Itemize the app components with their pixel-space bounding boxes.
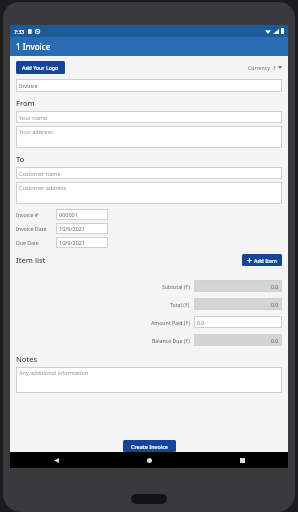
button[interactable]: Add Your Logo	[16, 61, 65, 74]
button[interactable]: Back	[50, 454, 62, 466]
staticText: From	[16, 98, 35, 108]
button[interactable]: Your name	[16, 111, 282, 123]
button[interactable]: Create Invoice	[123, 440, 176, 452]
button[interactable]: Customer name	[16, 167, 282, 179]
staticText: Customer name	[19, 170, 61, 177]
staticText: Balance Due (₹)	[152, 337, 190, 344]
button[interactable]: 10/9/2021	[56, 223, 108, 234]
staticText: Any additional information	[19, 369, 89, 376]
button[interactable]: Invoice	[16, 79, 282, 92]
staticText: Currency	[248, 64, 270, 71]
staticText: Invoice Date	[16, 225, 47, 232]
staticText: 10/9/2021	[59, 239, 86, 246]
staticText: Amount Paid (₹)	[151, 319, 190, 326]
staticText: Total (₹)	[170, 301, 190, 308]
button[interactable]: Any additional information	[16, 367, 282, 393]
staticText: ₹	[273, 64, 276, 71]
staticText: Create Invoice	[131, 443, 168, 450]
staticText: 000001	[59, 211, 78, 218]
staticText: Notes	[16, 354, 38, 364]
staticText: 7:33	[14, 28, 25, 35]
staticText: Item list	[16, 255, 46, 265]
staticText: Invoice	[19, 82, 38, 89]
button[interactable]: Add Item	[242, 254, 282, 266]
staticText: Add Item	[254, 257, 277, 264]
staticText: 10/9/2021	[59, 225, 86, 232]
staticText: Invoice #	[16, 211, 39, 218]
staticText: To	[16, 154, 25, 164]
button[interactable]: 0.0	[194, 316, 282, 328]
button[interactable]: 10/9/2021	[56, 237, 108, 248]
staticText: 1 Invoice	[16, 41, 51, 52]
button[interactable]: Home	[143, 454, 155, 466]
staticText: 0.0	[197, 319, 205, 326]
button[interactable]: Recents	[236, 454, 248, 466]
button[interactable]: Your address	[16, 126, 282, 148]
staticText: 0.0	[271, 337, 279, 344]
button[interactable]: 000001	[56, 209, 108, 220]
staticText: Your address	[19, 128, 53, 135]
staticText: 0.0	[271, 301, 279, 308]
button[interactable]: 0.0	[194, 334, 282, 346]
staticText: 0.0	[271, 283, 279, 290]
button[interactable]: Customer address	[16, 182, 282, 204]
staticText: Add Your Logo	[22, 64, 59, 71]
staticText: Your name	[19, 114, 47, 121]
staticText: Subtotal (₹)	[162, 283, 190, 290]
staticText: Customer address	[19, 184, 67, 191]
button[interactable]: Currency	[248, 64, 282, 71]
button[interactable]: 0.0	[194, 298, 282, 310]
button[interactable]: 0.0	[194, 280, 282, 292]
staticText: Due Date	[16, 239, 39, 246]
